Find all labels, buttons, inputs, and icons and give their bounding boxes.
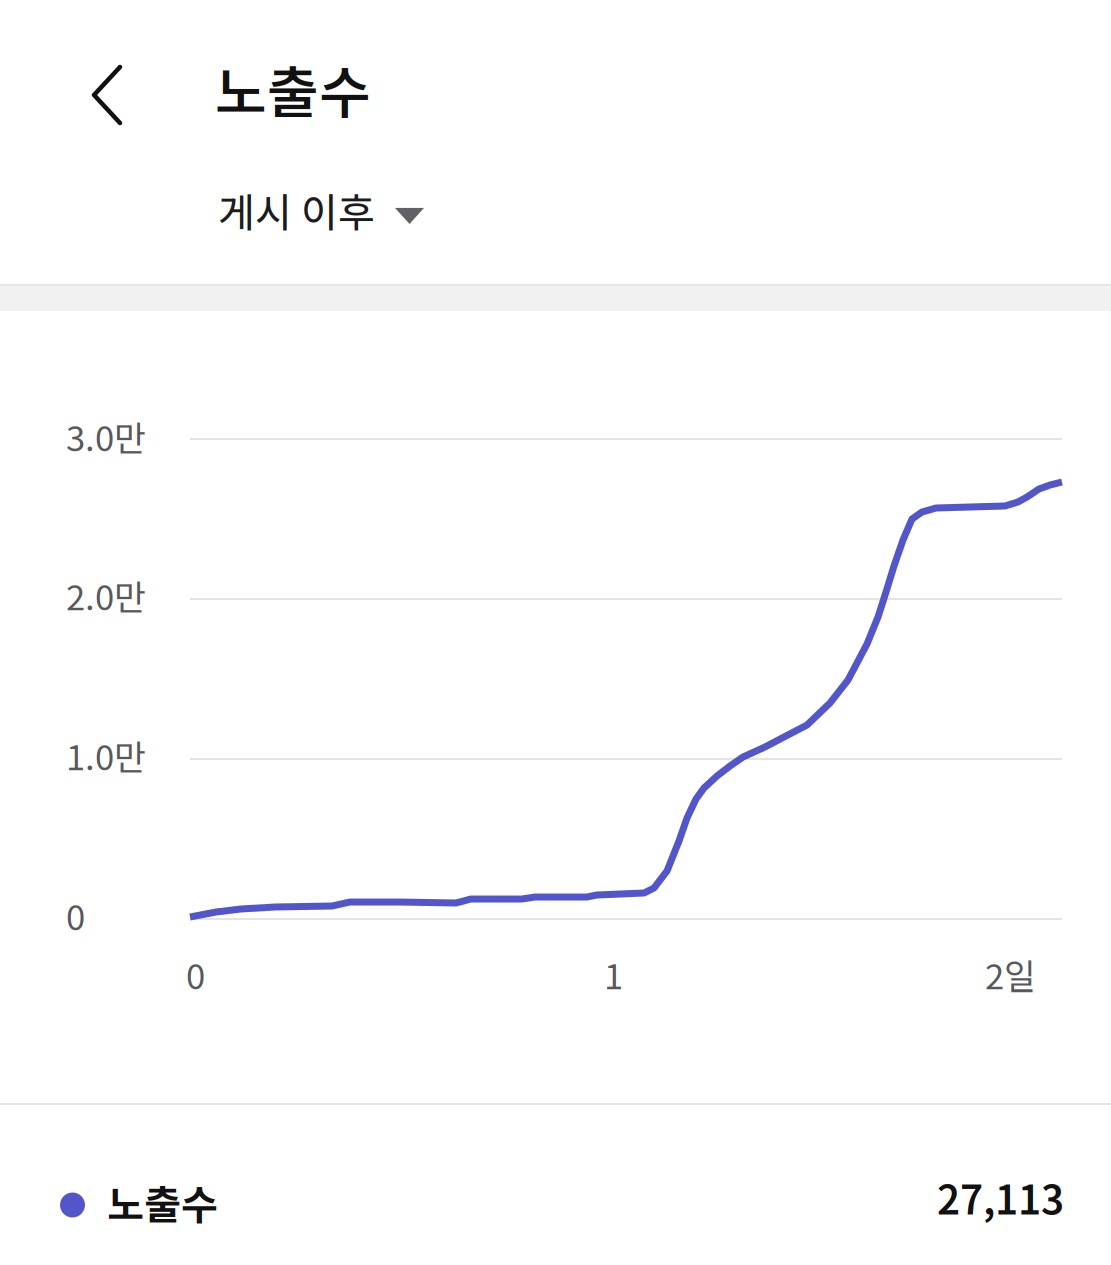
staticText: 0 — [186, 949, 205, 999]
button[interactable]: Back — [44, 29, 176, 161]
staticText: 2.0만 — [66, 570, 146, 620]
staticText: 1 — [604, 949, 623, 999]
button[interactable]: 게시 이후 — [204, 157, 438, 263]
staticText: 노출수 — [215, 48, 371, 129]
staticText: 노출수 — [107, 1173, 218, 1231]
staticText: 2일 — [985, 949, 1036, 999]
staticText: 3.0만 — [66, 411, 146, 461]
staticText: 27,113 — [937, 1168, 1064, 1226]
staticText: 1.0만 — [66, 730, 146, 780]
staticText: 0 — [66, 890, 85, 940]
staticText: 게시 이후 — [218, 181, 375, 239]
